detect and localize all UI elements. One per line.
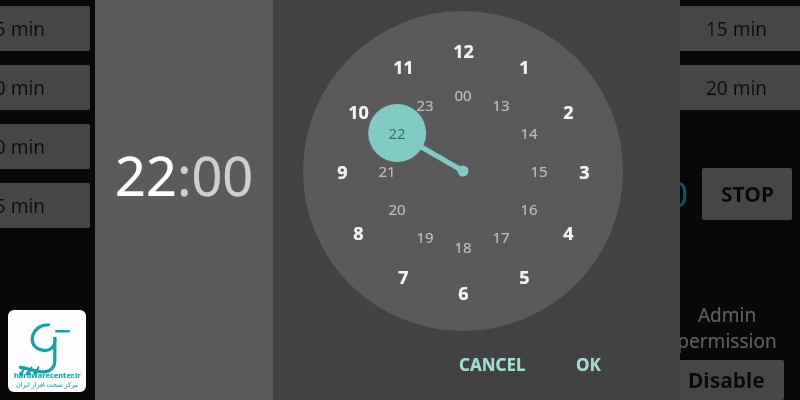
button[interactable]: 20 min bbox=[662, 65, 800, 110]
button[interactable]: 16 bbox=[512, 198, 546, 220]
staticText: 21 bbox=[378, 161, 396, 181]
button[interactable]: OK bbox=[570, 347, 607, 382]
button[interactable]: 5 bbox=[507, 265, 541, 287]
button[interactable]: 15 min bbox=[0, 6, 90, 51]
staticText: hardwarecenter.ir bbox=[14, 370, 81, 380]
staticText: 1 bbox=[519, 55, 530, 77]
button[interactable]: Disable bbox=[669, 360, 784, 400]
staticText: 18 bbox=[454, 237, 472, 257]
staticText: OK bbox=[576, 353, 601, 376]
staticText: 8 bbox=[353, 221, 364, 243]
staticText: 22 bbox=[388, 123, 406, 143]
button[interactable]: 22 bbox=[115, 138, 177, 212]
button[interactable]: 9 bbox=[325, 160, 359, 182]
staticText: 13 bbox=[492, 95, 510, 115]
staticText: 15 min bbox=[706, 16, 768, 42]
button[interactable]: 6 bbox=[446, 281, 480, 303]
staticText: 45 min bbox=[0, 193, 46, 219]
button[interactable]: 20 min bbox=[0, 65, 90, 110]
button[interactable]: STOP bbox=[702, 168, 792, 220]
button[interactable]: 20 bbox=[380, 198, 414, 220]
staticText: STOP bbox=[721, 180, 774, 209]
button[interactable]: 8 bbox=[341, 221, 375, 243]
button[interactable]: 22 bbox=[380, 122, 414, 144]
staticText: 00 bbox=[454, 85, 472, 105]
staticText: 19 bbox=[416, 227, 434, 247]
staticText: 4 bbox=[563, 221, 574, 243]
staticText: 2 bbox=[563, 100, 574, 122]
staticText: 14 bbox=[520, 123, 538, 143]
staticText: 6 bbox=[458, 281, 469, 303]
button[interactable]: 17 bbox=[484, 226, 518, 248]
button[interactable]: 4 bbox=[551, 221, 585, 243]
staticText: 00:00 bbox=[601, 171, 688, 217]
staticText: 15 min bbox=[0, 16, 46, 42]
button[interactable]: CANCEL bbox=[453, 347, 532, 382]
staticText: 7 bbox=[398, 265, 409, 287]
button[interactable]: 10 bbox=[341, 100, 375, 122]
staticText: 11 bbox=[393, 55, 414, 77]
button[interactable]: 11 bbox=[386, 55, 420, 77]
staticText: 16 bbox=[520, 199, 538, 219]
button[interactable]: 7 bbox=[386, 265, 420, 287]
button[interactable]: 14 bbox=[512, 122, 546, 144]
button[interactable]: 21 bbox=[370, 160, 404, 182]
staticText: 23 bbox=[416, 95, 434, 115]
staticText: 9 bbox=[337, 160, 348, 182]
button[interactable]: 15 min bbox=[662, 6, 800, 51]
staticText: 17 bbox=[492, 227, 510, 247]
staticText: 10 bbox=[348, 100, 369, 122]
staticText: 20 bbox=[388, 199, 406, 219]
button[interactable]: 1 bbox=[507, 55, 541, 77]
staticText: Admin permission bbox=[677, 302, 777, 354]
button[interactable]: 23 bbox=[408, 94, 442, 116]
button[interactable]: :00 bbox=[177, 138, 254, 212]
staticText: Disable bbox=[688, 366, 765, 395]
staticText: 20 min bbox=[0, 75, 46, 101]
button[interactable]: 30 min bbox=[0, 124, 90, 169]
button[interactable]: 18 bbox=[446, 236, 480, 258]
staticText: مرکز سخت افزار ایران bbox=[16, 380, 79, 389]
button[interactable]: 2 bbox=[551, 100, 585, 122]
button[interactable]: 15 bbox=[522, 160, 556, 182]
button[interactable]: 45 min bbox=[0, 183, 90, 228]
staticText: 12 bbox=[453, 39, 474, 61]
button[interactable]: 3 bbox=[567, 160, 601, 182]
staticText: 30 min bbox=[0, 134, 46, 160]
button[interactable]: 12 bbox=[446, 39, 480, 61]
button[interactable]: 19 bbox=[408, 226, 442, 248]
staticText: CANCEL bbox=[459, 353, 526, 376]
button[interactable]: 13 bbox=[484, 94, 518, 116]
staticText: 3 bbox=[579, 160, 590, 182]
staticText: 15 bbox=[530, 161, 548, 181]
staticText: 5 bbox=[519, 265, 530, 287]
other: hardwarecenter.ir watermark bbox=[8, 310, 86, 392]
button[interactable]: 00 bbox=[446, 84, 480, 106]
staticText: 20 min bbox=[706, 75, 768, 101]
